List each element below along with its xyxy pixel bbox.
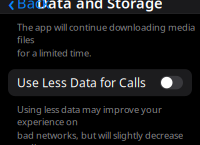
staticText: Data and Storage: [37, 0, 163, 13]
button[interactable]: Use Less Data for Calls: [8, 69, 192, 96]
staticText: Back: [17, 0, 50, 13]
button[interactable]: ‹: [2, 0, 56, 20]
staticText: Use Less Data for Calls: [17, 75, 146, 90]
staticText: bad networks, but will slightly decrease…: [17, 129, 183, 145]
staticText: for a limited time.: [17, 47, 92, 59]
staticText: The app will continue downloading media …: [17, 21, 195, 46]
staticText: Using less data may improve your experie…: [17, 103, 162, 128]
staticText: ‹: [8, 0, 15, 17]
